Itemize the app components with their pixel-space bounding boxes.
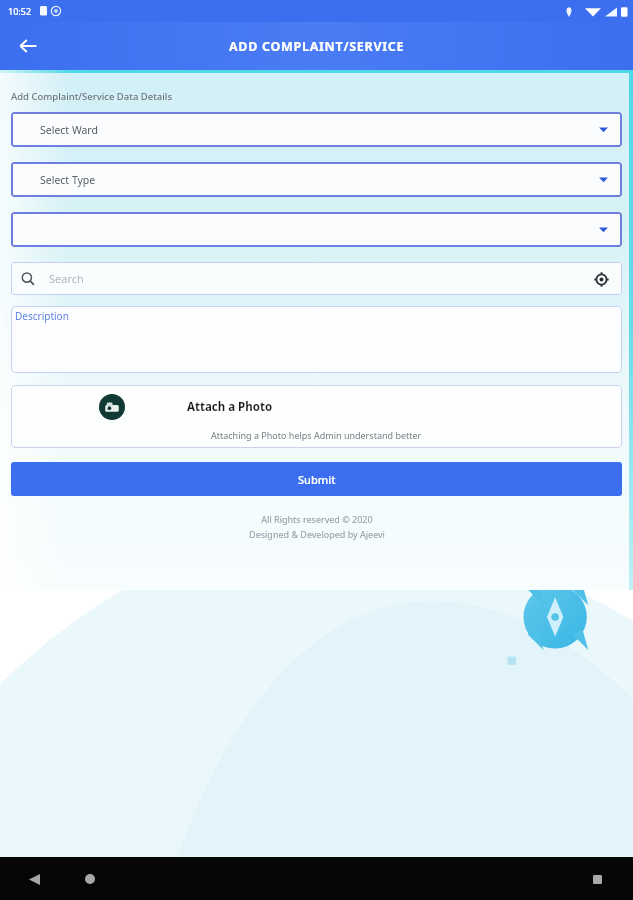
button[interactable]: Select Ward xyxy=(11,112,622,147)
staticText: Attach a Photo xyxy=(187,399,273,415)
staticText: Search xyxy=(49,271,590,286)
button[interactable]: Back xyxy=(20,865,48,893)
button[interactable]: Use my location xyxy=(590,268,612,290)
staticText: ADD COMPLAINT/SERVICE xyxy=(229,38,405,55)
button[interactable] xyxy=(11,212,622,247)
staticText: Submit xyxy=(298,472,336,487)
staticText: Attaching a Photo helps Admin understand… xyxy=(211,429,422,441)
staticText: Add Complaint/Service Data Details xyxy=(11,90,173,103)
staticText: Designed & Developed by Ajeevi xyxy=(249,528,385,540)
staticText: 10:52 xyxy=(8,5,32,17)
button[interactable]: Recent apps xyxy=(583,865,611,893)
staticText: Description xyxy=(15,309,69,323)
staticText: Select Ward xyxy=(40,123,599,137)
button[interactable]: Back xyxy=(8,26,48,66)
button[interactable]: Home xyxy=(76,865,104,893)
button[interactable]: Search xyxy=(11,262,622,295)
button[interactable]: Select Type xyxy=(11,162,622,197)
button[interactable]: Submit xyxy=(11,462,622,496)
staticText: Select Type xyxy=(40,173,599,187)
staticText: All Rights reserved © 2020 xyxy=(261,513,373,525)
button[interactable]: Description xyxy=(11,306,622,373)
button[interactable]: Attach a Photo xyxy=(11,385,622,448)
